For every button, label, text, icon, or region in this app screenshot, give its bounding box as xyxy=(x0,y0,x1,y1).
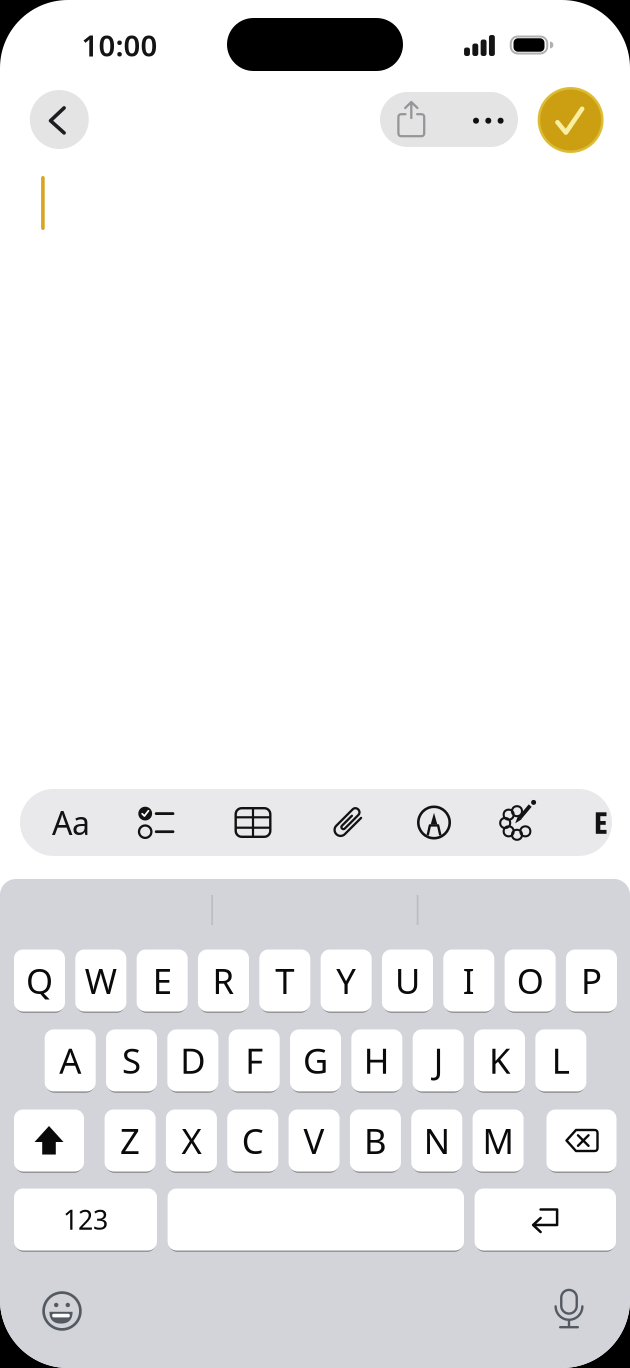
button[interactable]: Y xyxy=(321,949,372,1011)
button[interactable]: Q xyxy=(14,949,65,1011)
button[interactable] xyxy=(37,1286,87,1336)
button[interactable]: P xyxy=(566,949,617,1011)
button[interactable]: H xyxy=(351,1029,402,1091)
button[interactable]: X xyxy=(166,1109,217,1171)
button[interactable] xyxy=(380,92,449,147)
button[interactable]: V xyxy=(289,1109,340,1171)
staticText: T xyxy=(275,957,294,1003)
staticText: G xyxy=(303,1037,328,1083)
button[interactable] xyxy=(225,789,281,856)
staticText: O xyxy=(517,957,544,1003)
button[interactable] xyxy=(592,789,610,856)
staticText: X xyxy=(181,1117,201,1163)
button[interactable]: T xyxy=(259,949,310,1011)
button[interactable] xyxy=(320,789,376,856)
staticText: W xyxy=(85,957,117,1003)
button[interactable] xyxy=(128,789,184,856)
button[interactable]: K xyxy=(474,1029,525,1091)
button[interactable]: F xyxy=(229,1029,280,1091)
staticText: V xyxy=(304,1117,325,1163)
button[interactable]: W xyxy=(75,949,126,1011)
button[interactable] xyxy=(538,87,604,153)
button[interactable] xyxy=(30,90,89,149)
button[interactable]: B xyxy=(350,1109,401,1171)
button[interactable]: E xyxy=(137,949,188,1011)
button[interactable] xyxy=(14,1109,84,1171)
button[interactable]: N xyxy=(411,1109,462,1171)
staticText: M xyxy=(483,1117,514,1163)
staticText: I xyxy=(463,957,475,1003)
staticText: H xyxy=(364,1037,390,1083)
button[interactable]: 123 xyxy=(14,1188,157,1250)
button[interactable]: U xyxy=(382,949,433,1011)
staticText: 123 xyxy=(63,1202,108,1237)
staticText: A xyxy=(59,1037,81,1083)
button[interactable]: R xyxy=(198,949,249,1011)
button[interactable]: A xyxy=(45,1029,96,1091)
staticText: J xyxy=(434,1037,443,1083)
button[interactable]: O xyxy=(505,949,556,1011)
staticText: Q xyxy=(26,957,53,1003)
staticText: U xyxy=(395,957,420,1003)
button[interactable]: C xyxy=(227,1109,278,1171)
button[interactable]: Aa xyxy=(36,789,106,856)
button[interactable] xyxy=(491,789,547,856)
staticText: Z xyxy=(120,1117,140,1163)
button[interactable]: S xyxy=(106,1029,157,1091)
staticText: 10:00 xyxy=(81,25,157,64)
button[interactable]: D xyxy=(167,1029,218,1091)
staticText: C xyxy=(242,1117,264,1163)
button[interactable]: I xyxy=(443,949,494,1011)
button[interactable] xyxy=(475,1188,616,1250)
button[interactable] xyxy=(406,789,462,856)
staticText: K xyxy=(489,1037,510,1083)
staticText: R xyxy=(212,957,234,1003)
staticText: E xyxy=(153,957,172,1003)
button[interactable]: Z xyxy=(105,1109,156,1171)
button[interactable] xyxy=(546,1109,616,1171)
button[interactable]: L xyxy=(535,1029,586,1091)
staticText: Aa xyxy=(52,801,90,844)
staticText: B xyxy=(364,1117,387,1163)
button[interactable] xyxy=(449,92,518,147)
staticText: N xyxy=(424,1117,450,1163)
staticText: P xyxy=(581,957,602,1003)
button[interactable] xyxy=(168,1188,464,1250)
staticText: Y xyxy=(336,957,356,1003)
button[interactable] xyxy=(544,1283,594,1333)
staticText: L xyxy=(552,1037,570,1083)
button[interactable]: G xyxy=(290,1029,341,1091)
staticText: S xyxy=(122,1037,141,1083)
staticText: F xyxy=(245,1037,263,1083)
button[interactable]: M xyxy=(473,1109,524,1171)
staticText: D xyxy=(180,1037,205,1083)
button[interactable]: J xyxy=(413,1029,464,1091)
